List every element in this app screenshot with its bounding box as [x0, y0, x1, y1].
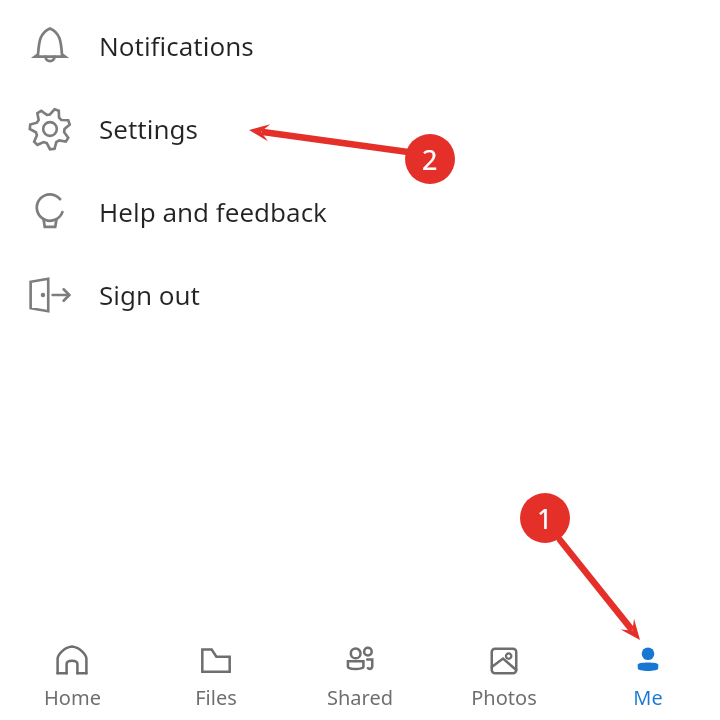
button[interactable]: Notifications: [0, 4, 720, 87]
button[interactable]: Sign out: [0, 253, 720, 336]
staticText: Home: [44, 684, 101, 711]
other: Step 2: [405, 134, 455, 184]
staticText: 1: [537, 500, 553, 537]
staticText: Help and feedback: [99, 194, 327, 229]
button[interactable]: Files: [144, 630, 288, 720]
button[interactable]: Help and feedback: [0, 170, 720, 253]
staticText: Me: [633, 684, 663, 711]
other: Step 1: [520, 493, 570, 543]
button[interactable]: Home: [0, 630, 144, 720]
staticText: Sign out: [99, 277, 200, 312]
staticText: Settings: [99, 111, 198, 146]
staticText: Shared: [327, 684, 393, 711]
button[interactable]: Me: [576, 630, 720, 720]
button[interactable]: Shared: [288, 630, 432, 720]
staticText: Photos: [471, 684, 537, 711]
staticText: 2: [422, 141, 438, 178]
button[interactable]: Settings: [0, 87, 720, 170]
staticText: Files: [195, 684, 237, 711]
button[interactable]: Photos: [432, 630, 576, 720]
staticText: Notifications: [99, 28, 254, 63]
